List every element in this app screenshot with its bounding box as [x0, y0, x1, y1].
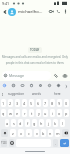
button[interactable]: k [53, 119, 58, 127]
button[interactable]: 0 [64, 99, 69, 107]
staticText: v [36, 131, 38, 136]
button[interactable]: s [11, 119, 16, 127]
button[interactable]: g [32, 119, 37, 127]
button[interactable]: x [18, 129, 24, 137]
staticText: words [32, 92, 41, 96]
staticText: Message [9, 73, 24, 78]
staticText: b [42, 131, 45, 136]
button[interactable]: v [34, 129, 39, 137]
button[interactable]: q [1, 109, 6, 117]
staticText: suggestion [8, 92, 25, 96]
staticText: . [55, 141, 56, 146]
button[interactable]: i [50, 109, 55, 117]
button[interactable]: n [48, 129, 53, 137]
button[interactable]: Backspace [62, 129, 69, 137]
staticText: q [2, 111, 5, 116]
staticText: l [62, 121, 63, 126]
button[interactable]: Message [2, 71, 51, 80]
button[interactable]: words [26, 90, 47, 98]
button[interactable]: Stickers [9, 81, 18, 90]
button[interactable]: j [46, 119, 51, 127]
button[interactable]: o [57, 109, 62, 117]
button[interactable]: More options [62, 8, 69, 15]
staticText: r [24, 111, 26, 116]
staticText: j [48, 121, 49, 126]
staticText: 7 [44, 101, 47, 106]
staticText: p [65, 111, 68, 116]
staticText: c [28, 131, 30, 136]
staticText: z [12, 131, 14, 136]
button[interactable]: t [29, 109, 34, 117]
button[interactable]: 7 [43, 99, 48, 107]
staticText: f [27, 121, 29, 126]
button[interactable]: a [5, 119, 9, 127]
button[interactable]: 6 [36, 99, 41, 107]
button[interactable]: 9 [57, 99, 62, 107]
button[interactable]: Emoji [9, 139, 14, 147]
button[interactable]: Theme [45, 81, 54, 90]
staticText: n [49, 131, 52, 136]
staticText: TODAY [30, 48, 40, 52]
button[interactable]: f [25, 119, 30, 127]
button[interactable]: 1 [1, 99, 6, 107]
staticText: here [54, 92, 61, 96]
button[interactable]: Call [55, 8, 62, 15]
button[interactable]: here [47, 90, 68, 98]
button[interactable]: 3 [15, 99, 20, 107]
button[interactable]: More tools [63, 82, 70, 90]
button[interactable]: Clipboard [27, 81, 36, 90]
button[interactable]: z [10, 129, 16, 137]
staticText: s [13, 121, 15, 126]
staticText: w [9, 111, 12, 116]
button[interactable]: Voice input [0, 90, 6, 98]
button[interactable]: Back [1, 8, 8, 15]
button[interactable]: Send [60, 139, 69, 147]
button[interactable]: l [60, 119, 65, 127]
button[interactable]: Settings [36, 81, 45, 90]
staticText: 6 [37, 101, 40, 106]
button[interactable]: y [36, 109, 41, 117]
button[interactable]: Translate [54, 81, 63, 90]
button[interactable]: r [22, 109, 27, 117]
button[interactable]: michaelho... [18, 9, 48, 15]
staticText: g [33, 121, 36, 126]
staticText: 1 [2, 101, 5, 106]
button[interactable]: Shift [1, 129, 8, 137]
button[interactable]: m [55, 129, 60, 137]
button[interactable]: Profile photo [8, 8, 16, 16]
staticText: h [40, 121, 43, 126]
staticText: y [38, 111, 40, 116]
button[interactable]: 5 [29, 99, 34, 107]
button[interactable]: w [8, 109, 13, 117]
staticText: e [16, 111, 19, 116]
button[interactable]: d [18, 119, 23, 127]
button[interactable]: Video call [48, 8, 55, 15]
button[interactable]: e [15, 109, 20, 117]
button[interactable]: Messages and calls are end-to-end encryp… [2, 55, 68, 65]
staticText: ?123 [1, 141, 7, 145]
button[interactable]: u [43, 109, 48, 117]
button[interactable]: 8 [50, 99, 55, 107]
button[interactable]: 4 [22, 99, 27, 107]
staticText: 0 [65, 101, 68, 106]
button[interactable]: p [64, 109, 69, 117]
button[interactable]: Attach [51, 71, 60, 80]
staticText: k [54, 121, 57, 126]
button[interactable]: suggestion [6, 90, 26, 98]
button[interactable]: Camera [60, 71, 69, 80]
button[interactable]: TODAY [28, 47, 42, 53]
button[interactable]: c [26, 129, 32, 137]
button[interactable]: b [41, 129, 46, 137]
button[interactable]: Keyboard settings [0, 81, 9, 90]
button[interactable]: GIF [18, 81, 27, 90]
button[interactable]: 2 [8, 99, 13, 107]
button[interactable]: . [53, 139, 58, 147]
staticText: x [20, 131, 23, 136]
button[interactable]: ?123 [1, 139, 7, 147]
staticText: 5 [30, 101, 33, 106]
staticText: m [56, 131, 60, 136]
staticText: i [52, 111, 53, 116]
staticText: t [31, 111, 33, 116]
button[interactable]: h [39, 119, 44, 127]
